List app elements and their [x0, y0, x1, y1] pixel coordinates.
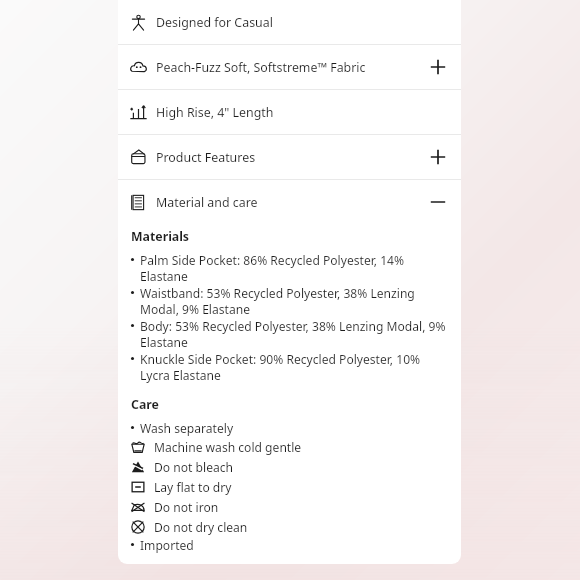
staticText: Waistband: 53% Recycled Polyester, 38% L…: [140, 285, 449, 317]
staticText: Designed for Casual: [156, 14, 273, 31]
button[interactable]: Peach-Fuzz Soft, Softstreme™ Fabric: [118, 45, 461, 89]
staticText: Palm Side Pocket: 86% Recycled Polyester…: [140, 252, 449, 284]
staticText: Body: 53% Recycled Polyester, 38% Lenzin…: [140, 318, 449, 350]
staticText: High Rise, 4" Length: [156, 104, 274, 121]
staticText: Care: [131, 396, 159, 413]
staticText: Lay flat to dry: [154, 479, 232, 495]
staticText: Peach-Fuzz Soft, Softstreme™ Fabric: [156, 59, 366, 76]
staticText: Knuckle Side Pocket: 90% Recycled Polyes…: [140, 351, 449, 383]
button[interactable]: High Rise, 4" Length: [118, 90, 461, 134]
staticText: Do not iron: [154, 499, 219, 515]
staticText: Wash separately: [140, 420, 234, 436]
other: Expand: [427, 56, 449, 78]
staticText: Do not bleach: [154, 459, 234, 475]
other: Collapse: [427, 191, 449, 213]
staticText: Imported: [140, 537, 194, 553]
staticText: Do not dry clean: [154, 519, 248, 535]
staticText: Materials: [131, 228, 190, 245]
button[interactable]: Material and care: [118, 180, 461, 224]
staticText: Machine wash cold gentle: [154, 439, 302, 455]
button[interactable]: Designed for Casual: [118, 0, 461, 44]
staticText: Material and care: [156, 194, 258, 211]
other: Expand: [427, 146, 449, 168]
staticText: Product Features: [156, 149, 256, 166]
button[interactable]: Product Features: [118, 135, 461, 179]
